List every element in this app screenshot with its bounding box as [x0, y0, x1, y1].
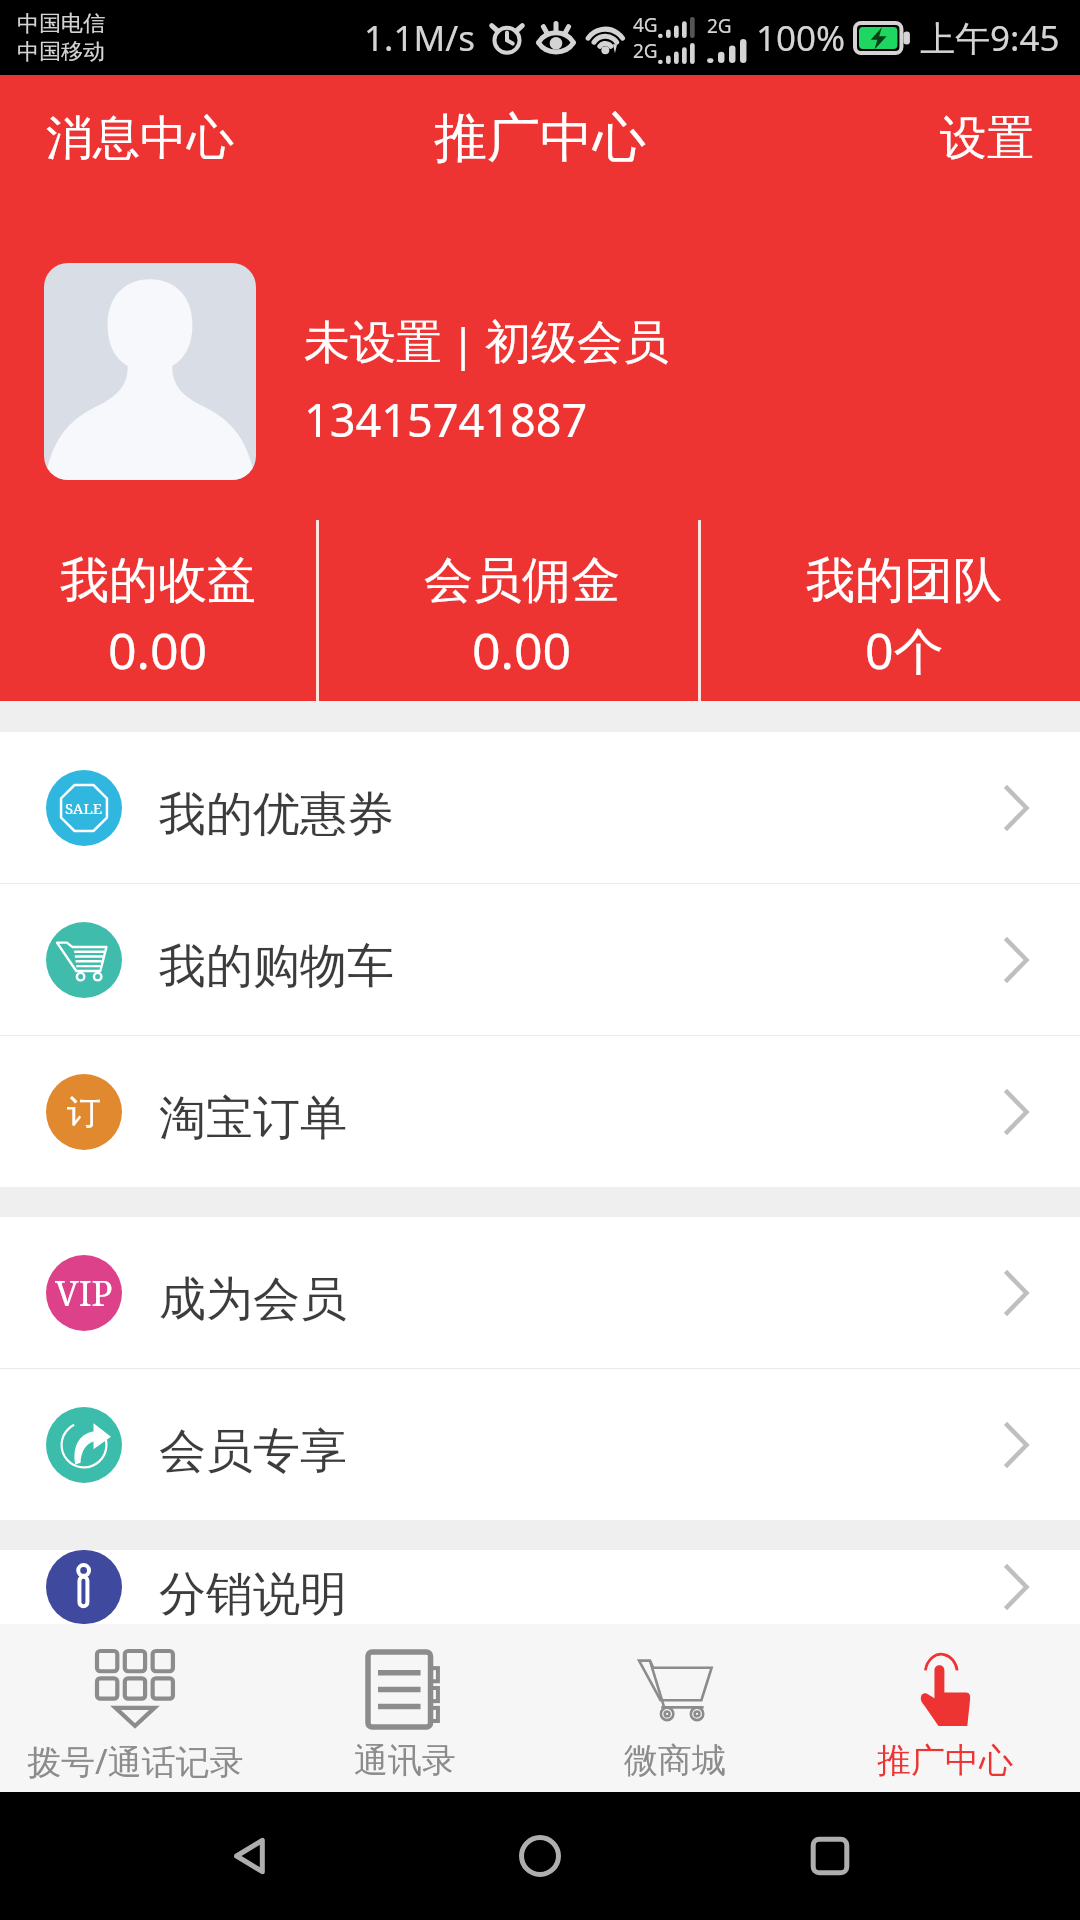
button[interactable]: Back	[210, 1816, 290, 1896]
staticText: 设置	[940, 109, 1034, 168]
staticText: 拨号/通话记录	[27, 1738, 244, 1784]
button[interactable]: 我的购物车	[0, 884, 1080, 1035]
button[interactable]: 会员专享	[0, 1369, 1080, 1520]
staticText: 未设置	[304, 314, 442, 372]
button[interactable]: 设置	[894, 87, 1080, 190]
button[interactable]: VIP	[0, 1217, 1080, 1368]
staticText: 分销说明	[159, 1565, 347, 1624]
staticText: 中国电信	[17, 10, 105, 38]
staticText: 我的收益	[60, 550, 256, 612]
button[interactable]: 消息中心	[0, 87, 280, 190]
staticText: 会员佣金	[424, 550, 620, 612]
staticText: 推广中心	[877, 1739, 1013, 1782]
button[interactable]: Home	[500, 1816, 580, 1896]
button[interactable]: 订	[0, 1036, 1080, 1187]
button[interactable]: Recents	[790, 1816, 870, 1896]
staticText: 我的购物车	[159, 937, 394, 996]
staticText: 13415741887	[304, 389, 588, 450]
button[interactable]: SALE	[0, 732, 1080, 883]
button[interactable]: 微商城	[540, 1624, 810, 1792]
staticText: 0个	[865, 616, 944, 684]
staticText: 2G	[707, 13, 732, 39]
button[interactable]: 会员佣金	[332, 520, 712, 701]
staticText: 订	[67, 1091, 101, 1134]
button[interactable]: 我的团队	[714, 520, 1080, 701]
button[interactable]: 通讯录	[270, 1624, 540, 1792]
staticText: 上午9:45	[920, 14, 1060, 62]
staticText: 4G	[633, 12, 658, 38]
button[interactable]: 拨号/通话记录	[0, 1624, 270, 1792]
button[interactable]: 分销说明	[0, 1550, 1080, 1624]
staticText: 成为会员	[159, 1270, 347, 1329]
staticText: 推广中心	[434, 105, 646, 172]
staticText: 我的优惠券	[159, 785, 394, 844]
staticText: 2G	[633, 38, 658, 64]
staticText: 1.1M/s	[364, 14, 475, 62]
staticText: 100%	[756, 14, 846, 62]
button[interactable]: Avatar	[44, 263, 256, 480]
staticText: 淘宝订单	[159, 1089, 347, 1148]
staticText: 会员专享	[159, 1422, 347, 1481]
staticText: |	[451, 313, 476, 373]
staticText: 中国移动	[17, 38, 105, 66]
staticText: VIP	[55, 1269, 113, 1317]
staticText: 我的团队	[806, 550, 1002, 612]
button[interactable]: 推广中心	[810, 1624, 1080, 1792]
button[interactable]: 我的收益	[0, 520, 316, 701]
staticText: 0.00	[108, 616, 208, 684]
staticText: 通讯录	[354, 1739, 456, 1782]
staticText: 初级会员	[485, 314, 669, 372]
staticText: SALE	[65, 798, 103, 818]
staticText: 微商城	[624, 1739, 726, 1782]
staticText: 0.00	[472, 616, 572, 684]
staticText: 消息中心	[46, 109, 234, 168]
